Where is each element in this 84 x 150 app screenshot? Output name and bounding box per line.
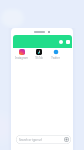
button[interactable]: Search by image xyxy=(64,137,69,142)
button[interactable]: Search or type url xyxy=(16,135,71,144)
button[interactable]: Twitter xyxy=(47,49,64,60)
button[interactable]: Account xyxy=(59,40,63,44)
button[interactable]: TikTok xyxy=(30,49,47,60)
staticText: Twitter xyxy=(51,56,60,60)
staticText: Search or type url xyxy=(19,138,43,142)
button[interactable]: Tabs xyxy=(66,40,70,44)
button[interactable]: Instagram xyxy=(13,49,30,60)
staticText: TikTok xyxy=(35,56,43,60)
staticText: Instagram xyxy=(15,56,28,60)
